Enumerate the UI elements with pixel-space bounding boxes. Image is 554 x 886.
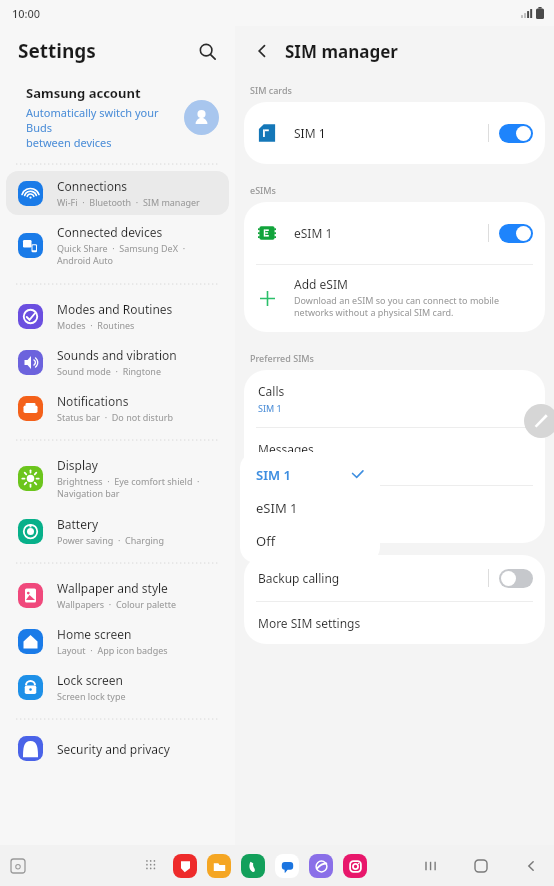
- button[interactable]: Back: [520, 855, 542, 877]
- staticText: Home screen: [57, 626, 132, 642]
- button[interactable]: Edit: [524, 404, 554, 438]
- staticText: Wallpapers · Colour palette: [57, 598, 176, 610]
- button[interactable]: Connected devices: [6, 217, 229, 274]
- staticText: Backup calling: [258, 570, 340, 586]
- staticText: Display: [57, 457, 98, 473]
- button[interactable]: Sounds and vibration: [6, 340, 229, 384]
- staticText: Sound mode · Ringtone: [57, 365, 161, 377]
- staticText: Wi-Fi · Bluetooth · SIM manager: [57, 196, 200, 208]
- button[interactable]: Notifications: [6, 386, 229, 430]
- staticText: Settings: [18, 38, 96, 64]
- button[interactable]: Mobile data: [244, 486, 545, 543]
- staticText: SIM manager: [285, 40, 398, 63]
- staticText: Calls: [258, 383, 285, 399]
- button[interactable]: snap: [173, 854, 197, 878]
- button[interactable]: Backup calling: [244, 555, 545, 601]
- button[interactable]: msg: [275, 854, 299, 878]
- staticText: SIM cards: [250, 84, 292, 96]
- staticText: eSIM 1: [256, 499, 298, 517]
- staticText: Brightness · Eye comfort shield · Naviga…: [57, 475, 200, 500]
- staticText: Lock screen: [57, 672, 124, 688]
- staticText: Screen lock type: [57, 690, 126, 702]
- staticText: 10:00: [12, 6, 41, 21]
- staticText: Layout · App icon badges: [57, 644, 168, 656]
- staticText: Status bar · Do not disturb: [57, 411, 173, 423]
- staticText: SIM 1: [258, 460, 282, 472]
- staticText: eSIM 1: [294, 225, 333, 241]
- button[interactable]: Recents: [420, 855, 442, 877]
- button[interactable]: Apps: [141, 855, 163, 877]
- button[interactable]: Wallpaper and style: [6, 573, 229, 617]
- button[interactable]: Connections: [6, 171, 229, 215]
- staticText: Preferred SIMs: [250, 352, 314, 364]
- staticText: Security and privacy: [57, 741, 170, 757]
- button[interactable]: phone: [241, 854, 265, 878]
- button[interactable]: Lock screen: [6, 665, 229, 709]
- button[interactable]: Search: [193, 37, 221, 65]
- button[interactable]: Screenshot: [6, 854, 30, 878]
- button[interactable]: More SIM settings: [244, 602, 545, 644]
- staticText: Connections: [57, 178, 128, 194]
- button[interactable]: Messages: [244, 428, 545, 485]
- button[interactable]: SIM 1: [240, 458, 380, 491]
- staticText: Connected devices: [57, 224, 163, 240]
- staticText: Mobile data: [258, 499, 325, 515]
- button[interactable]: Calls: [244, 370, 545, 427]
- button[interactable]: Security and privacy: [6, 729, 229, 768]
- staticText: Add eSIM: [294, 276, 348, 292]
- staticText: Samsung account: [26, 84, 141, 102]
- button[interactable]: Modes and Routines: [6, 294, 229, 338]
- staticText: Modes · Routines: [57, 319, 135, 331]
- button[interactable]: internet: [309, 854, 333, 878]
- staticText: Download an eSIM so you can connect to m…: [294, 294, 500, 319]
- staticText: More SIM settings: [258, 615, 361, 631]
- staticText: Automatically switch your Buds between d…: [26, 105, 184, 150]
- button[interactable]: files: [207, 854, 231, 878]
- staticText: SIM 1: [258, 402, 282, 414]
- button[interactable]: Add eSIM: [244, 265, 545, 332]
- staticText: SIM 1: [294, 125, 326, 141]
- button[interactable]: On: [499, 124, 533, 143]
- button[interactable]: Samsung account: [0, 76, 235, 158]
- button[interactable]: eSIM 1: [240, 491, 380, 524]
- button[interactable]: insta: [343, 854, 367, 878]
- staticText: Notifications: [57, 393, 129, 409]
- button[interactable]: Home: [470, 855, 492, 877]
- button[interactable]: Off: [499, 569, 533, 588]
- button[interactable]: Back: [249, 38, 275, 64]
- staticText: eSIMs: [250, 184, 276, 196]
- button[interactable]: On: [499, 224, 533, 243]
- button[interactable]: Display: [6, 450, 229, 507]
- button[interactable]: Battery: [6, 509, 229, 553]
- staticText: Wallpaper and style: [57, 580, 168, 596]
- button[interactable]: SIM 1: [244, 102, 545, 164]
- staticText: Battery: [57, 516, 99, 532]
- button[interactable]: Home screen: [6, 619, 229, 663]
- button[interactable]: Off: [240, 524, 380, 557]
- button[interactable]: eSIM 1: [244, 202, 545, 264]
- staticText: Messages: [258, 441, 314, 457]
- staticText: SIM 1: [256, 466, 291, 484]
- staticText: Quick Share · Samsung DeX · Android Auto: [57, 242, 186, 267]
- staticText: Power saving · Charging: [57, 534, 164, 546]
- staticText: Modes and Routines: [57, 301, 173, 317]
- staticText: Off: [256, 532, 276, 550]
- staticText: Sounds and vibration: [57, 347, 177, 363]
